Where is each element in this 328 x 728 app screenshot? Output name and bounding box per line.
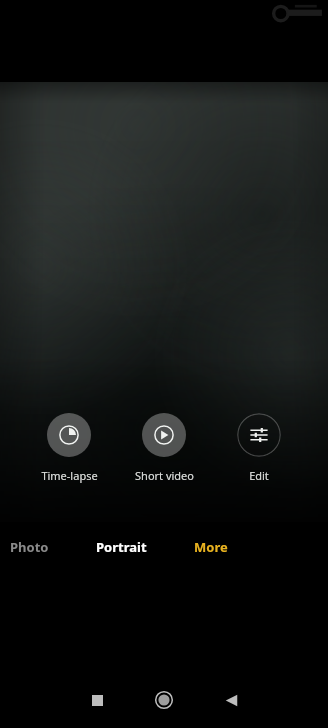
button[interactable]: Photo — [0, 530, 59, 564]
button[interactable]: Portrait — [86, 530, 157, 564]
staticText: More — [194, 538, 228, 556]
staticText: Edit — [249, 468, 269, 483]
staticText: Time-lapse — [41, 468, 98, 483]
button[interactable]: Time-lapse — [24, 413, 114, 483]
button[interactable]: Short video — [119, 413, 209, 483]
button[interactable]: Edit — [214, 413, 304, 483]
button[interactable]: More — [184, 530, 238, 564]
staticText: Short video — [135, 468, 194, 483]
button[interactable]: Recents — [75, 678, 119, 722]
button[interactable]: Back — [209, 678, 253, 722]
staticText: Portrait — [96, 538, 147, 556]
button[interactable]: Home — [142, 678, 186, 722]
staticText: Photo — [10, 538, 49, 556]
